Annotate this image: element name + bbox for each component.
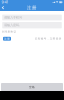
staticText: 已有账号，立即登录 [35,37,62,40]
staticText: 9:41 [1,0,7,4]
staticText: 同意协议 [5,30,17,33]
staticText: 注册 [27,5,37,10]
staticText: 请输入密码 [4,23,19,27]
button[interactable]: 同意协议 [2,30,62,33]
button[interactable]: 已有账号，立即登录 [35,37,62,40]
staticText: 空格 [29,85,35,89]
button[interactable]: 注册 [3,37,11,41]
staticText: 请输入手机号 [4,15,22,20]
staticText: 注册 [4,37,10,40]
button[interactable]: Back [0,4,6,11]
